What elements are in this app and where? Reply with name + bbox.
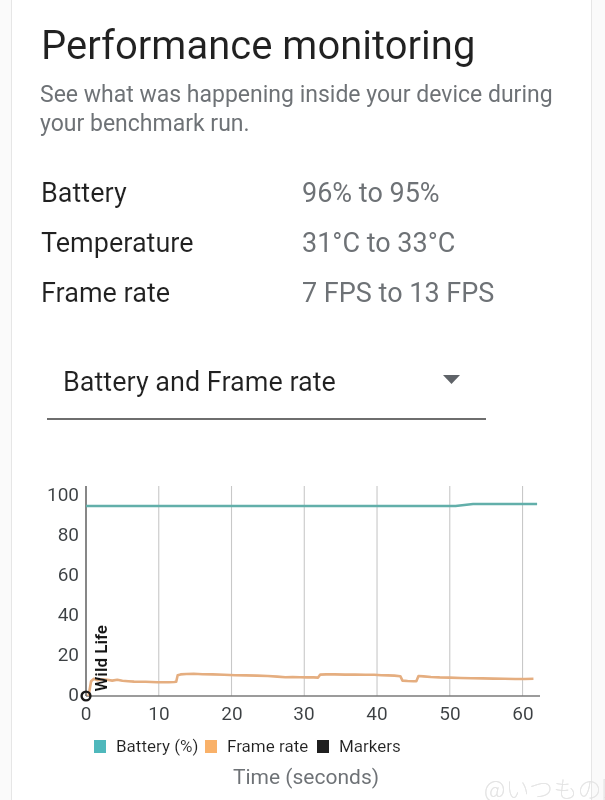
staticText: 20 (207, 702, 257, 724)
staticText: 80 (39, 523, 79, 545)
staticText: See what was happening inside your devic… (40, 81, 575, 137)
staticText: 30 (279, 702, 329, 724)
staticText: 7 FPS to 13 FPS (302, 277, 495, 309)
staticText: 60 (39, 563, 79, 585)
staticText: 31°C to 33°C (302, 227, 456, 259)
staticText: Battery and Frame rate (63, 366, 336, 398)
staticText: Battery (%) (116, 736, 199, 756)
button[interactable]: Frame rate (0, 266, 605, 312)
button[interactable]: Frame rate (205, 736, 309, 756)
staticText: 40 (352, 702, 402, 724)
staticText: 100 (39, 483, 79, 505)
staticText: Temperature (41, 227, 194, 259)
staticText: 0 (61, 702, 111, 724)
button[interactable]: Markers (317, 736, 401, 756)
button[interactable]: Select chart series (47, 352, 486, 420)
staticText: Battery (41, 177, 127, 209)
staticText: 50 (425, 702, 475, 724)
staticText: Performance monitoring (41, 22, 476, 69)
staticText: 40 (39, 603, 79, 625)
staticText: 10 (134, 702, 184, 724)
staticText: Frame rate (41, 277, 171, 309)
button[interactable]: Battery (%) (94, 736, 199, 756)
staticText: Markers (339, 736, 401, 756)
staticText: 20 (39, 643, 79, 665)
button[interactable]: Battery (0, 166, 605, 212)
staticText: Time (seconds) (79, 765, 533, 790)
staticText: Frame rate (227, 736, 309, 756)
button[interactable]: Temperature (0, 216, 605, 262)
staticText: 96% to 95% (302, 177, 440, 209)
staticText: 0 (39, 683, 79, 705)
staticText: 60 (498, 702, 548, 724)
staticText: @いつもの匠 (484, 770, 605, 800)
staticText: Wild Life (90, 624, 110, 691)
